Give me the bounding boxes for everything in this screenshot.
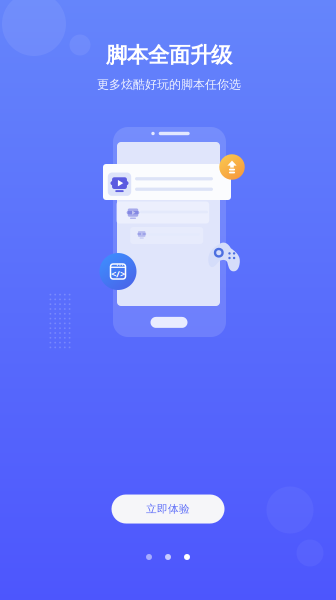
staticText: 脚本全面升级 [106,42,232,68]
staticText: 立即体验 [146,502,190,515]
staticText: 更多炫酷好玩的脚本任你选 [97,77,241,92]
staticText: </> [111,267,125,280]
button[interactable]: 立即体验 [111,494,224,523]
